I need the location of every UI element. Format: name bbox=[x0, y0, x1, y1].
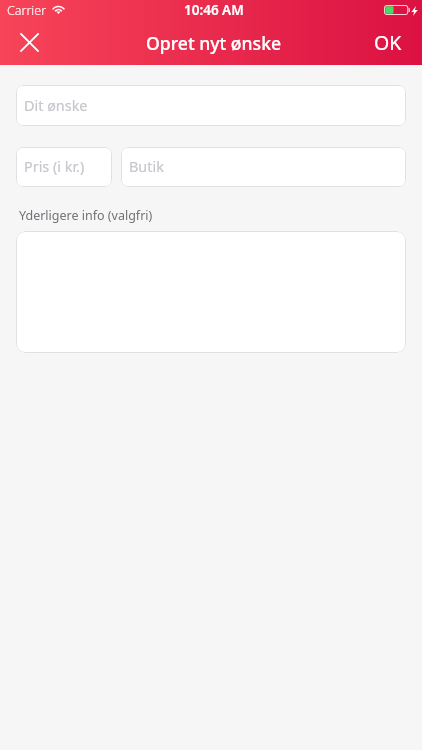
staticText: Carrier bbox=[7, 2, 47, 19]
button[interactable] bbox=[16, 231, 406, 353]
button[interactable]: Dit ønske bbox=[16, 85, 406, 126]
button[interactable]: Pris (i kr.) bbox=[16, 147, 112, 187]
staticText: Opret nyt ønske bbox=[146, 31, 282, 55]
button[interactable]: Luk bbox=[7, 20, 51, 64]
staticText: Pris (i kr.) bbox=[24, 157, 85, 177]
button[interactable]: Butik bbox=[121, 147, 406, 187]
staticText: Butik bbox=[129, 157, 164, 177]
button[interactable]: OK bbox=[358, 20, 422, 65]
staticText: OK bbox=[374, 29, 402, 56]
staticText: Yderligere info (valgfri) bbox=[19, 207, 153, 224]
staticText: 10:46 AM bbox=[184, 1, 244, 19]
staticText: Dit ønske bbox=[24, 96, 88, 116]
